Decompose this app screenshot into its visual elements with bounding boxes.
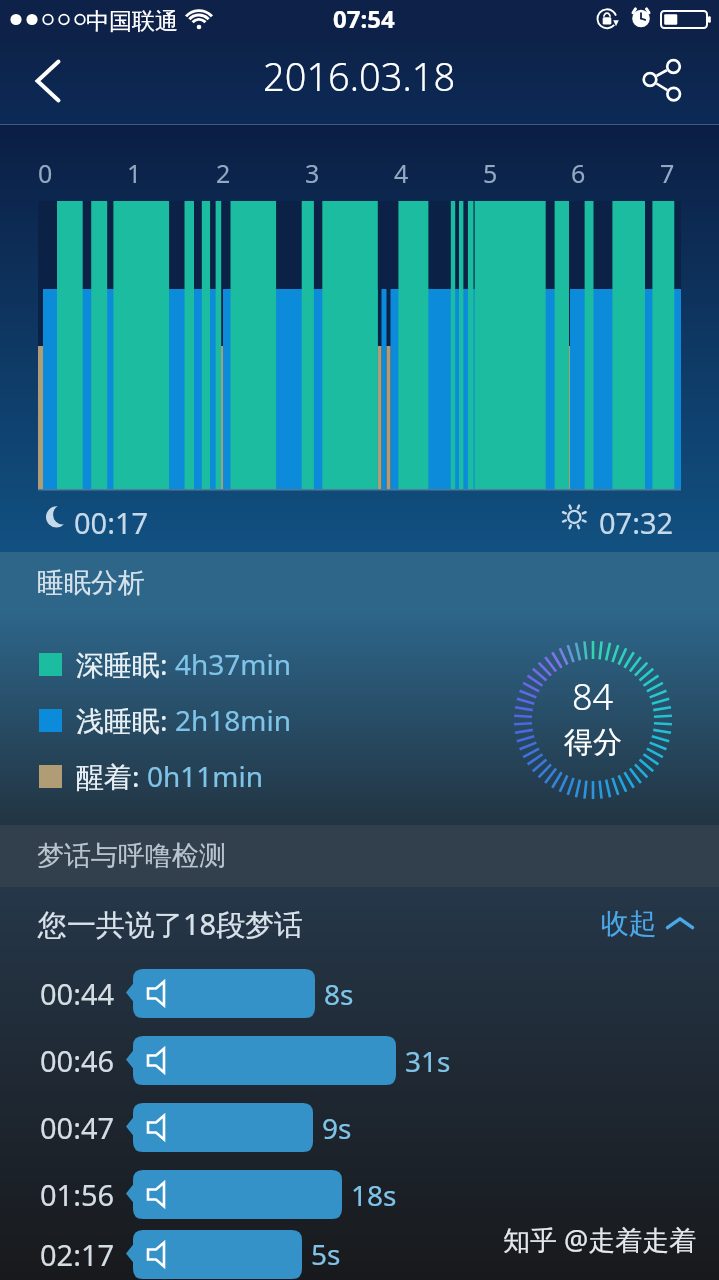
button[interactable]: Back [14, 47, 82, 115]
button[interactable]: 您一共说了18段梦话 [0, 887, 719, 960]
staticText: 3 [305, 156, 320, 190]
staticText: 6 [571, 156, 586, 190]
staticText: 得分 [564, 724, 622, 761]
staticText: 00:17 [74, 503, 149, 542]
staticText: 01:56 [40, 1175, 115, 1214]
staticText: 0 [38, 156, 53, 190]
staticText: 00:47 [40, 1108, 115, 1147]
staticText: 深睡眠: [76, 645, 175, 683]
staticText: 2 [216, 156, 231, 190]
staticText: 中国联通 [86, 7, 178, 36]
button[interactable]: 00:44 [0, 960, 719, 1027]
staticText: 4 [394, 156, 409, 190]
staticText: 1 [127, 156, 142, 190]
staticText: 9s [322, 1109, 352, 1147]
staticText: 睡眠分析 [37, 566, 145, 600]
button[interactable]: 02:17 [0, 1228, 719, 1280]
staticText: 2h18min [175, 701, 292, 739]
staticText: 8s [324, 975, 354, 1013]
staticText: 18s [351, 1176, 397, 1214]
button[interactable]: Share [631, 46, 699, 114]
staticText: 02:17 [40, 1235, 115, 1274]
staticText: 7 [660, 156, 675, 190]
staticText: 07:32 [599, 503, 674, 542]
staticText: 00:44 [40, 974, 115, 1013]
staticText: 醒着: [76, 757, 147, 795]
staticText: 2016.03.18 [263, 50, 456, 102]
staticText: 浅睡眠: [76, 701, 175, 739]
staticText: 梦话与呼噜检测 [37, 839, 226, 873]
staticText: 07:54 [333, 2, 395, 35]
staticText: 00:46 [40, 1041, 115, 1080]
staticText: 5 [483, 156, 498, 190]
staticText: 您一共说了18段梦话 [38, 904, 304, 944]
staticText: 收起 [601, 906, 657, 941]
staticText: 31s [405, 1042, 451, 1080]
staticText: 知乎 @走着走着 [503, 1221, 697, 1258]
staticText: 5s [311, 1235, 341, 1273]
staticText: 0h11min [147, 757, 264, 795]
staticText: 84 [572, 672, 614, 721]
staticText: 4h37min [175, 645, 292, 683]
button[interactable]: 00:46 [0, 1027, 719, 1094]
button[interactable]: 00:47 [0, 1094, 719, 1161]
button[interactable]: 01:56 [0, 1161, 719, 1228]
